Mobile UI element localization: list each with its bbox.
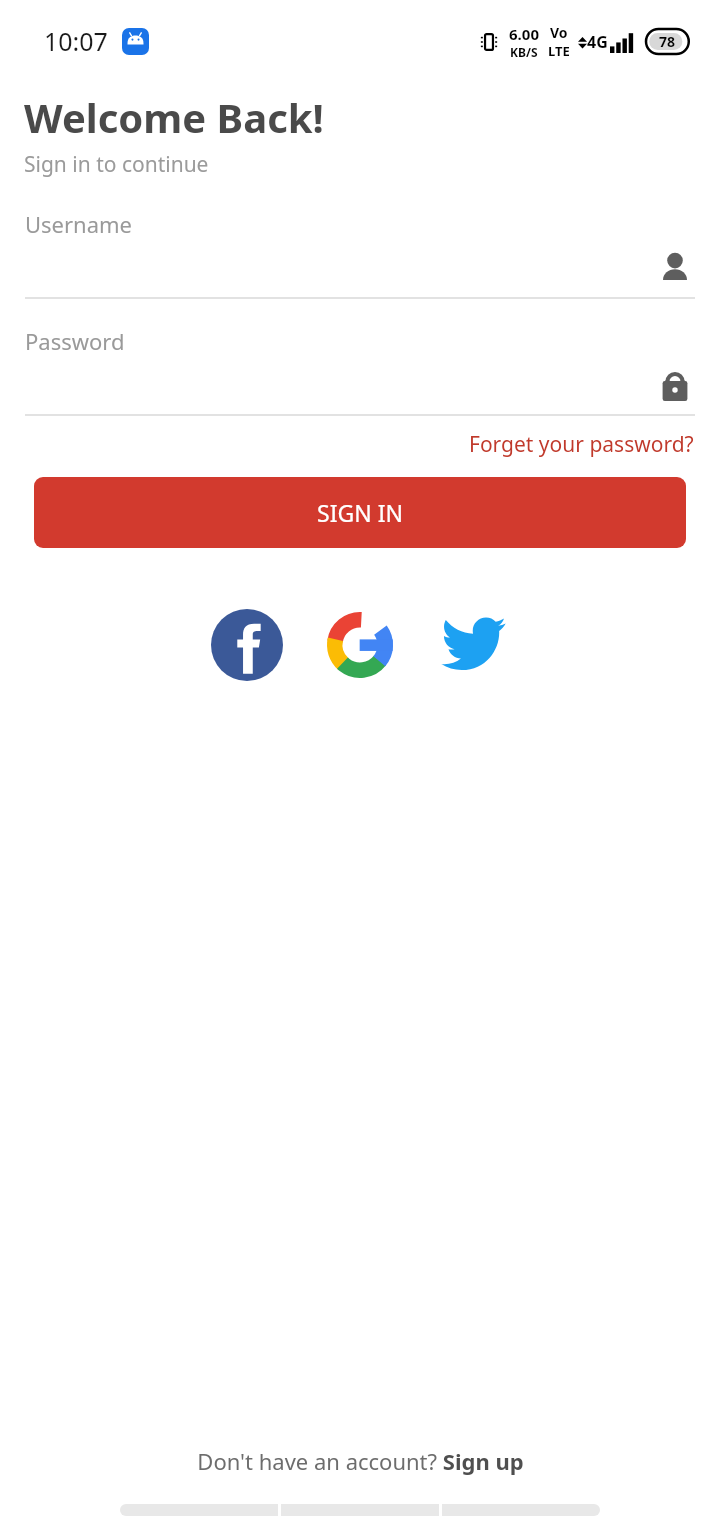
- button[interactable]: Don't have an account? Sign up: [185, 1440, 536, 1482]
- staticText: Username: [25, 209, 133, 239]
- staticText: Welcome Back!: [24, 90, 324, 144]
- staticText: Vo: [550, 23, 568, 42]
- button[interactable]: Sign in with Facebook: [203, 601, 291, 689]
- staticText: KB/S: [510, 44, 538, 60]
- button[interactable]: Username: [0, 209, 720, 299]
- staticText: Forget your password?: [469, 430, 694, 459]
- button[interactable]: Forget your password?: [465, 426, 698, 463]
- button[interactable]: Sign in with Twitter: [429, 601, 517, 689]
- staticText: Sign in to continue: [24, 150, 209, 179]
- button[interactable]: Password: [0, 326, 720, 416]
- staticText: LTE: [548, 42, 570, 60]
- button[interactable]: SIGN IN: [34, 477, 686, 548]
- staticText: 10:07: [44, 24, 108, 58]
- staticText: 4G: [587, 31, 608, 53]
- button[interactable]: Sign in with Google: [316, 601, 404, 689]
- staticText: SIGN IN: [317, 497, 403, 528]
- staticText: Password: [25, 326, 125, 356]
- staticText: 6.00: [509, 24, 539, 44]
- staticText: Don't have an account? Sign up: [197, 1446, 524, 1476]
- staticText: 78: [659, 32, 676, 51]
